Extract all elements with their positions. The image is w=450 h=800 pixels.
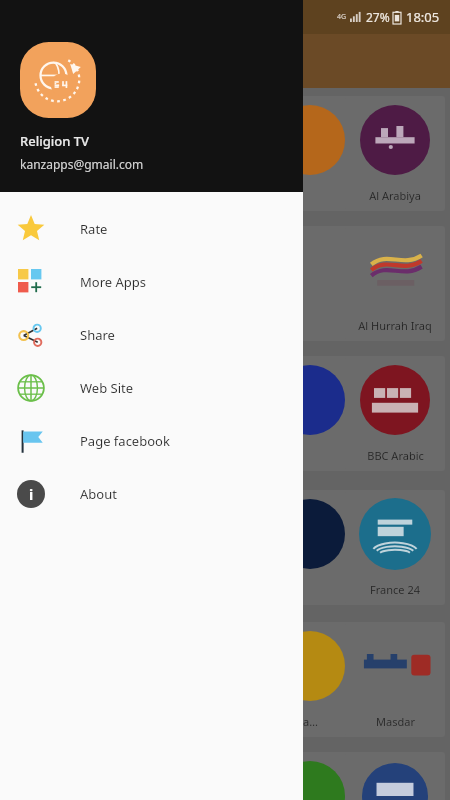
- button[interactable]: Web Site: [0, 361, 303, 414]
- staticText: kanzapps@gmail.com: [20, 156, 144, 172]
- button[interactable]: Al Hurrah Iraq: [345, 226, 445, 341]
- button[interactable]: [260, 226, 360, 341]
- button[interactable]: France 24: [345, 490, 445, 605]
- button[interactable]: a…: [260, 622, 360, 737]
- button[interactable]: i: [0, 467, 303, 520]
- button[interactable]: [260, 752, 360, 800]
- staticText: About: [80, 485, 117, 503]
- button[interactable]: [260, 490, 360, 605]
- staticText: Al Arabiya: [369, 188, 421, 203]
- button[interactable]: [260, 356, 360, 471]
- staticText: a…: [303, 714, 318, 729]
- staticText: 4G: [337, 12, 347, 22]
- staticText: Page facebook: [80, 432, 170, 450]
- staticText: 27%: [366, 9, 390, 25]
- staticText: Rate: [80, 220, 108, 238]
- button[interactable]: Rate: [0, 202, 303, 255]
- staticText: More Apps: [80, 273, 147, 291]
- button[interactable]: Share: [0, 308, 303, 361]
- button[interactable]: Sky News: [345, 752, 445, 800]
- button[interactable]: [260, 96, 360, 211]
- staticText: Web Site: [80, 379, 134, 397]
- button[interactable]: Masdar: [345, 622, 445, 737]
- button[interactable]: Al Arabiya: [345, 96, 445, 211]
- button[interactable]: Page facebook: [0, 414, 303, 467]
- button[interactable]: BBC Arabic: [345, 356, 445, 471]
- staticText: Religion TV: [20, 132, 90, 150]
- staticText: Share: [80, 326, 115, 344]
- staticText: France 24: [370, 582, 420, 597]
- staticText: i: [29, 485, 34, 504]
- staticText: 18:05: [406, 8, 440, 26]
- button[interactable]: More Apps: [0, 255, 303, 308]
- staticText: BBC Arabic: [367, 448, 424, 463]
- staticText: Masdar: [376, 714, 415, 729]
- staticText: Al Hurrah Iraq: [358, 318, 432, 333]
